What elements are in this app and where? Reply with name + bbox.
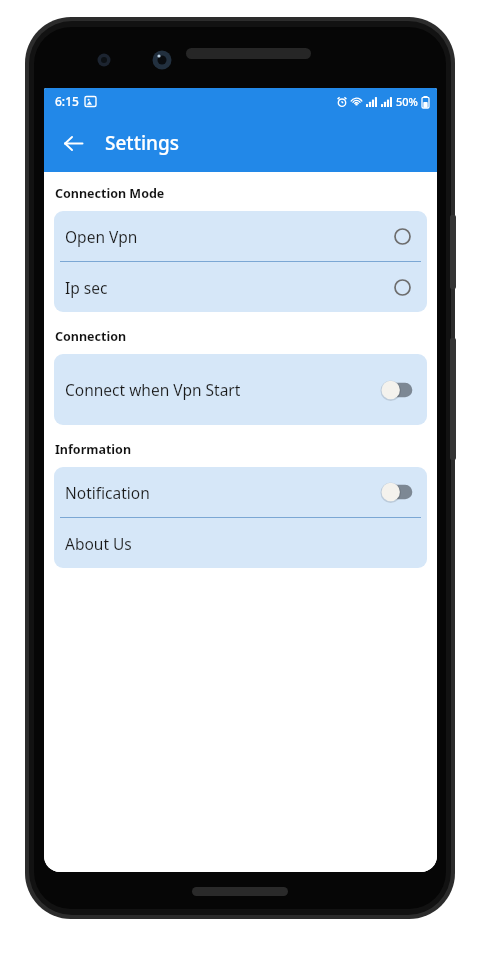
staticText: Information [55, 441, 132, 458]
staticText: Connection [55, 328, 127, 345]
staticText: About Us [65, 533, 132, 554]
staticText: 6:15 [55, 93, 79, 109]
button[interactable]: Toggle Connect when Vpn Start [380, 380, 413, 400]
staticText: Connection Mode [55, 185, 165, 202]
staticText: 50% [396, 94, 418, 109]
button[interactable]: Toggle Notification [380, 482, 413, 502]
staticText: Open Vpn [65, 226, 138, 247]
staticText: Notification [65, 482, 150, 503]
staticText: Ip sec [65, 277, 108, 298]
staticText: Connect when Vpn Start [65, 379, 241, 400]
button[interactable]: Notification [54, 467, 427, 517]
button[interactable]: Ip sec [54, 262, 427, 312]
button[interactable]: Connect when Vpn Start [54, 354, 427, 425]
button[interactable]: About Us [54, 518, 427, 568]
button[interactable]: Open Vpn [54, 211, 427, 261]
staticText: Settings [105, 130, 179, 156]
button[interactable]: Back [52, 122, 94, 164]
